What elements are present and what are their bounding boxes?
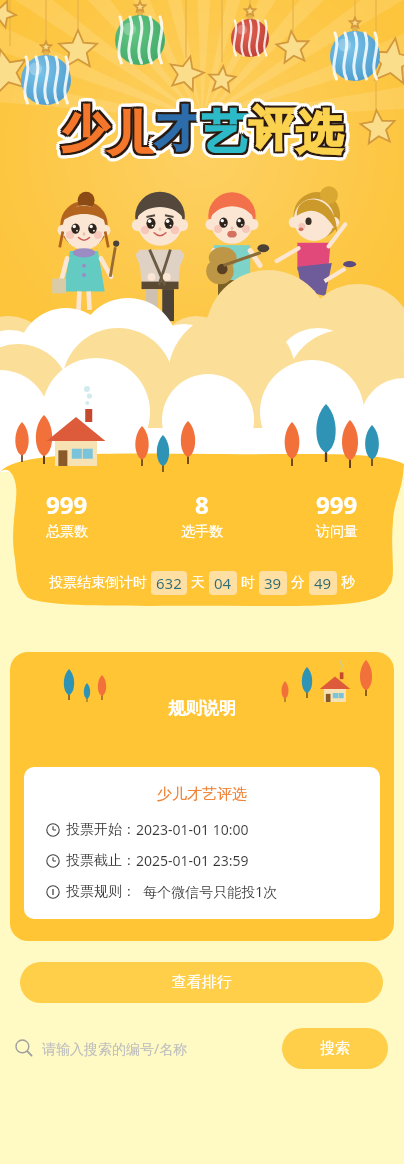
staticText: 评 (254, 100, 301, 159)
staticText: 艺 (203, 104, 250, 163)
staticText: 儿 (104, 101, 151, 160)
staticText: 选 (298, 99, 345, 158)
staticText: 少 (61, 101, 108, 160)
staticText: 儿 (113, 107, 160, 166)
staticText: 选 (296, 103, 343, 162)
staticText: 艺 (202, 102, 249, 161)
staticText: 才 (155, 100, 202, 159)
staticText: 少 (59, 100, 106, 159)
staticText: 投票规则： (66, 883, 136, 901)
staticText: 评 (251, 100, 298, 159)
staticText: 评 (249, 100, 296, 159)
staticText: 才 (153, 105, 200, 164)
staticText: 秒 (341, 574, 355, 592)
staticText: 选 (296, 104, 343, 163)
staticText: 选 (300, 108, 347, 167)
staticText: 少 (59, 95, 106, 154)
staticText: 少 (59, 102, 106, 161)
button[interactable]: Search (14, 1027, 272, 1069)
staticText: 评 (244, 102, 291, 161)
staticText: 评 (249, 95, 296, 154)
staticText: 艺 (207, 106, 254, 165)
staticText: 才 (150, 100, 197, 159)
staticText: 39 (264, 573, 282, 593)
staticText: 艺 (204, 104, 251, 163)
staticText: 儿 (108, 106, 155, 165)
staticText: 少 (63, 105, 110, 164)
staticText: 艺 (198, 100, 245, 159)
staticText: 选 (296, 99, 343, 158)
staticText: 少 (61, 102, 108, 161)
staticText: 艺 (202, 105, 249, 164)
staticText: 评 (251, 102, 298, 161)
staticText: 选 (301, 106, 348, 165)
staticText: 艺 (200, 106, 247, 165)
staticText: 2023-01-01 10:00 (136, 820, 249, 839)
staticText: 选 (296, 106, 343, 165)
staticText: 少 (59, 105, 106, 164)
staticText: 艺 (206, 108, 253, 167)
staticText: 艺 (204, 109, 251, 168)
button[interactable]: 搜索 (282, 1028, 388, 1069)
staticText: 投票结束倒计时 (49, 574, 147, 592)
staticText: 艺 (206, 100, 253, 159)
staticText: 访问量 (316, 523, 358, 541)
staticText: 选 (300, 100, 347, 159)
staticText: 少 (61, 98, 108, 157)
staticText: 才 (157, 102, 204, 161)
staticText: 选 (294, 104, 341, 163)
staticText: 儿 (106, 100, 153, 159)
staticText: 选 (301, 104, 348, 163)
staticText: 评 (247, 105, 294, 164)
staticText: 总票数 (46, 523, 88, 541)
staticText: 少 (63, 102, 110, 161)
staticText: 选 (294, 102, 341, 161)
staticText: 评 (251, 98, 298, 157)
staticText: 8 (195, 488, 209, 521)
staticText: 少儿才艺评选 (157, 785, 247, 804)
staticText: 艺 (207, 102, 254, 161)
staticText: 艺 (202, 103, 249, 162)
staticText: 评 (247, 98, 294, 157)
staticText: 选 (298, 104, 345, 163)
staticText: 少 (61, 100, 108, 159)
staticText: 儿 (113, 105, 160, 164)
staticText: 艺 (204, 99, 251, 158)
staticText: 艺 (200, 104, 247, 163)
staticText: 少 (60, 100, 107, 159)
staticText: 评 (249, 99, 296, 158)
staticText: 少 (56, 98, 103, 157)
staticText: 少 (56, 100, 103, 159)
staticText: 632 (156, 573, 182, 593)
staticText: 才 (153, 102, 200, 161)
staticText: 儿 (110, 103, 157, 162)
staticText: 艺 (202, 109, 249, 168)
staticText: 艺 (197, 104, 244, 163)
staticText: 请输入搜索的编号/名称 (42, 1039, 188, 1058)
staticText: 少 (59, 98, 106, 157)
staticText: 儿 (108, 104, 155, 163)
staticText: 儿 (108, 105, 155, 164)
staticText: 评 (253, 104, 300, 163)
staticText: 天 (191, 574, 205, 592)
staticText: 少 (63, 98, 110, 157)
staticText: 选 (296, 102, 343, 161)
staticText: 儿 (108, 107, 155, 166)
staticText: 选 (301, 102, 348, 161)
staticText: 评 (247, 102, 294, 161)
staticText: 选 (295, 104, 342, 163)
staticText: 儿 (113, 103, 160, 162)
staticText: 艺 (200, 99, 247, 158)
staticText: 才 (155, 102, 202, 161)
staticText: 艺 (200, 109, 247, 168)
staticText: 艺 (200, 102, 247, 161)
staticText: 选 (294, 106, 341, 165)
staticText: 999 (316, 488, 358, 521)
button[interactable]: 查看排行 (20, 962, 383, 1003)
staticText: 儿 (110, 100, 157, 159)
staticText: 儿 (110, 105, 157, 164)
staticText: 儿 (103, 103, 150, 162)
staticText: 少 (61, 95, 108, 154)
staticText: 选 (297, 104, 344, 163)
staticText: 儿 (112, 101, 159, 160)
